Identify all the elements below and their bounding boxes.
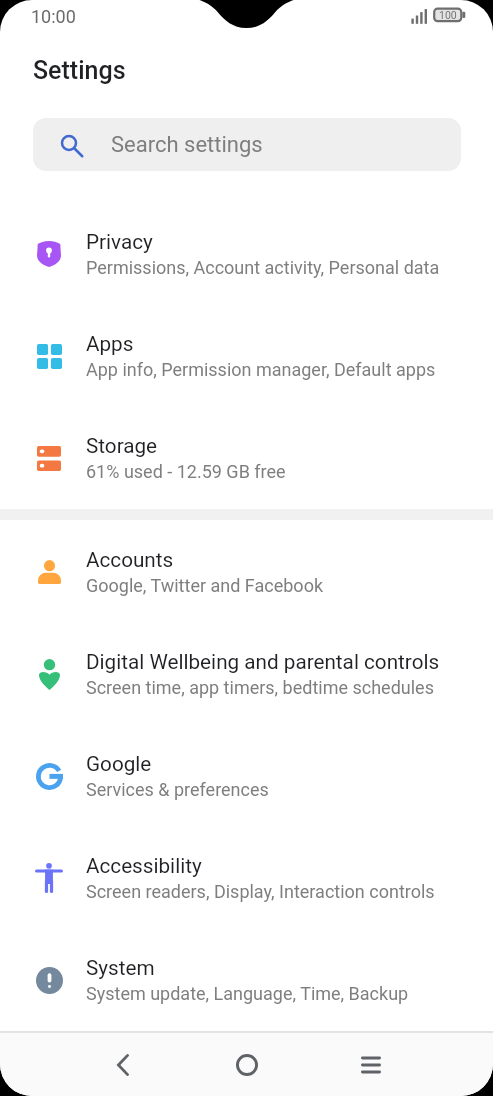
button[interactable]: Apps <box>0 305 493 407</box>
staticText: Settings <box>33 56 126 85</box>
button[interactable]: Home <box>185 1033 309 1096</box>
button[interactable]: Back <box>60 1033 185 1096</box>
staticText: System update, Language, Time, Backup <box>86 983 409 1004</box>
staticText: Apps <box>86 332 134 356</box>
button[interactable]: Recent apps <box>309 1033 433 1096</box>
staticText: Screen time, app timers, bedtime schedul… <box>86 677 434 698</box>
staticText: Digital Wellbeing and parental controls <box>86 650 440 674</box>
staticText: App info, Permission manager, Default ap… <box>86 359 436 380</box>
button[interactable]: System <box>0 929 493 1031</box>
staticText: Accounts <box>86 548 174 572</box>
staticText: 10:00 <box>31 6 76 27</box>
button[interactable]: Search settings <box>33 118 461 171</box>
button[interactable]: Digital Wellbeing and parental controls <box>0 623 493 725</box>
staticText: Storage <box>86 434 158 458</box>
staticText: Permissions, Account activity, Personal … <box>86 257 440 278</box>
staticText: Screen readers, Display, Interaction con… <box>86 881 435 902</box>
staticText: Services & preferences <box>86 779 269 800</box>
staticText: 61% used - 12.59 GB free <box>86 461 286 482</box>
staticText: Google, Twitter and Facebook <box>86 575 324 596</box>
button[interactable]: Privacy <box>0 203 493 305</box>
staticText: System <box>86 956 155 980</box>
button[interactable]: Storage <box>0 407 493 509</box>
staticText: Google <box>86 752 152 776</box>
button[interactable]: Google <box>0 725 493 827</box>
staticText: 100 <box>439 9 457 21</box>
staticText: Search settings <box>111 132 263 158</box>
button[interactable]: Accessibility <box>0 827 493 929</box>
button[interactable]: Accounts <box>0 521 493 623</box>
staticText: Accessibility <box>86 854 202 878</box>
staticText: Privacy <box>86 230 153 254</box>
